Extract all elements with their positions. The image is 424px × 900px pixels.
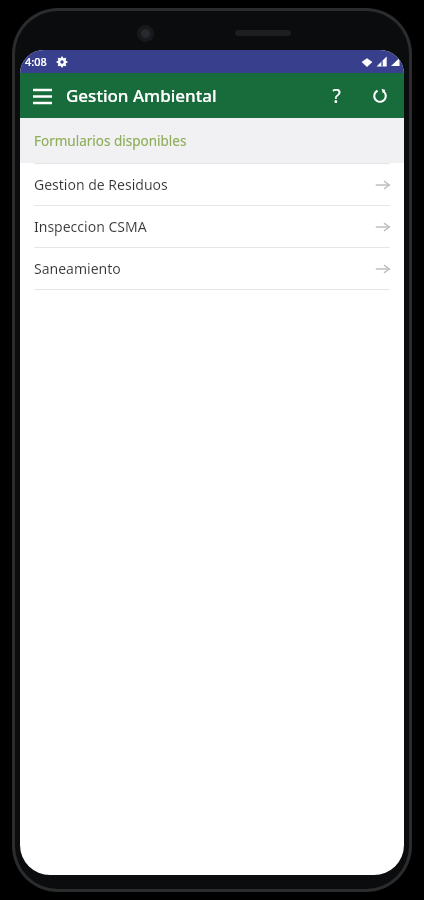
staticText: Formularios disponibles [34,132,187,150]
staticText: Gestion de Residuos [34,175,168,194]
button[interactable]: Saneamiento [20,248,404,290]
staticText: ? [332,83,341,109]
staticText: Inspeccion CSMA [34,217,147,236]
button[interactable]: Gestion de Residuos [20,164,404,206]
button[interactable]: Refresh [358,74,402,118]
button[interactable]: Open navigation menu [20,74,64,118]
staticText: Saneamiento [34,259,121,278]
staticText: 4:08 [25,54,47,69]
button[interactable]: Help [314,74,358,118]
staticText: Gestion Ambiental [66,84,217,107]
button[interactable]: Inspeccion CSMA [20,206,404,248]
